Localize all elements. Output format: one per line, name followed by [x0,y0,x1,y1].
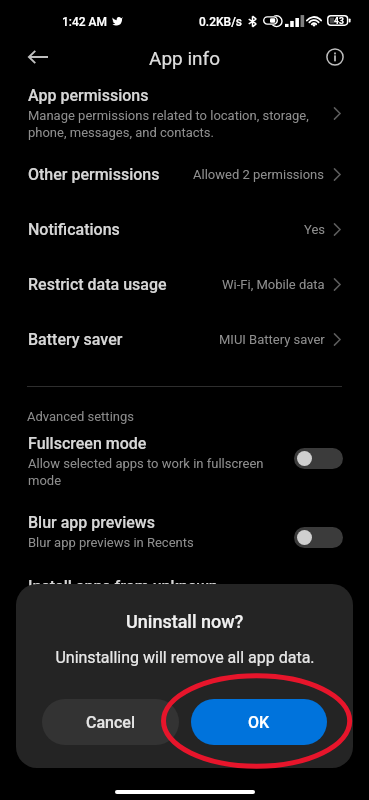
staticText: Notifications [28,220,120,239]
button[interactable]: Toggle Blur app previews [294,527,343,548]
staticText: OK [248,713,270,732]
staticText: Wi-Fi, Mobile data [222,277,325,292]
button[interactable]: App details [317,39,353,75]
staticText: MIUI Battery saver [219,332,325,347]
staticText: Blur app previews [28,513,155,532]
staticText: App info [149,47,220,69]
button[interactable]: Toggle Fullscreen mode [294,448,343,469]
staticText: App permissions [28,86,149,105]
staticText: Allow selected apps to work in fullscree… [28,456,280,489]
button[interactable]: OK [191,699,327,745]
button[interactable]: Install apps from unknown [0,573,369,603]
staticText: Manage permissions related to location, … [28,108,320,141]
button[interactable]: Battery saver [0,312,369,367]
staticText: Uninstalling will remove all app data. [55,648,315,667]
staticText: 0.2KB/s [199,15,242,29]
staticText: Fullscreen mode [28,434,147,453]
staticText: 43 [334,16,344,26]
button[interactable]: Restrict data usage [0,257,369,312]
staticText: Advanced settings [27,409,134,424]
staticText: Battery saver [28,330,123,349]
staticText: Restrict data usage [28,275,167,294]
button[interactable]: App permissions [0,83,369,145]
button[interactable]: Other permissions [0,147,369,202]
staticText: Other permissions [28,165,160,184]
staticText: Cancel [86,713,135,732]
staticText: Allowed 2 permissions [193,167,325,182]
button[interactable]: Notifications [0,202,369,257]
button[interactable]: Blur app previews [0,513,369,565]
button[interactable]: Back [19,38,57,76]
staticText: Blur app previews in Recents [28,535,194,550]
staticText: Install apps from unknown [28,577,218,596]
staticText: 1:42 AM [62,15,108,29]
button[interactable]: Fullscreen mode [0,434,369,486]
staticText: Uninstall now? [126,611,244,632]
staticText: Yes [304,222,325,237]
button[interactable]: Cancel [42,699,179,745]
